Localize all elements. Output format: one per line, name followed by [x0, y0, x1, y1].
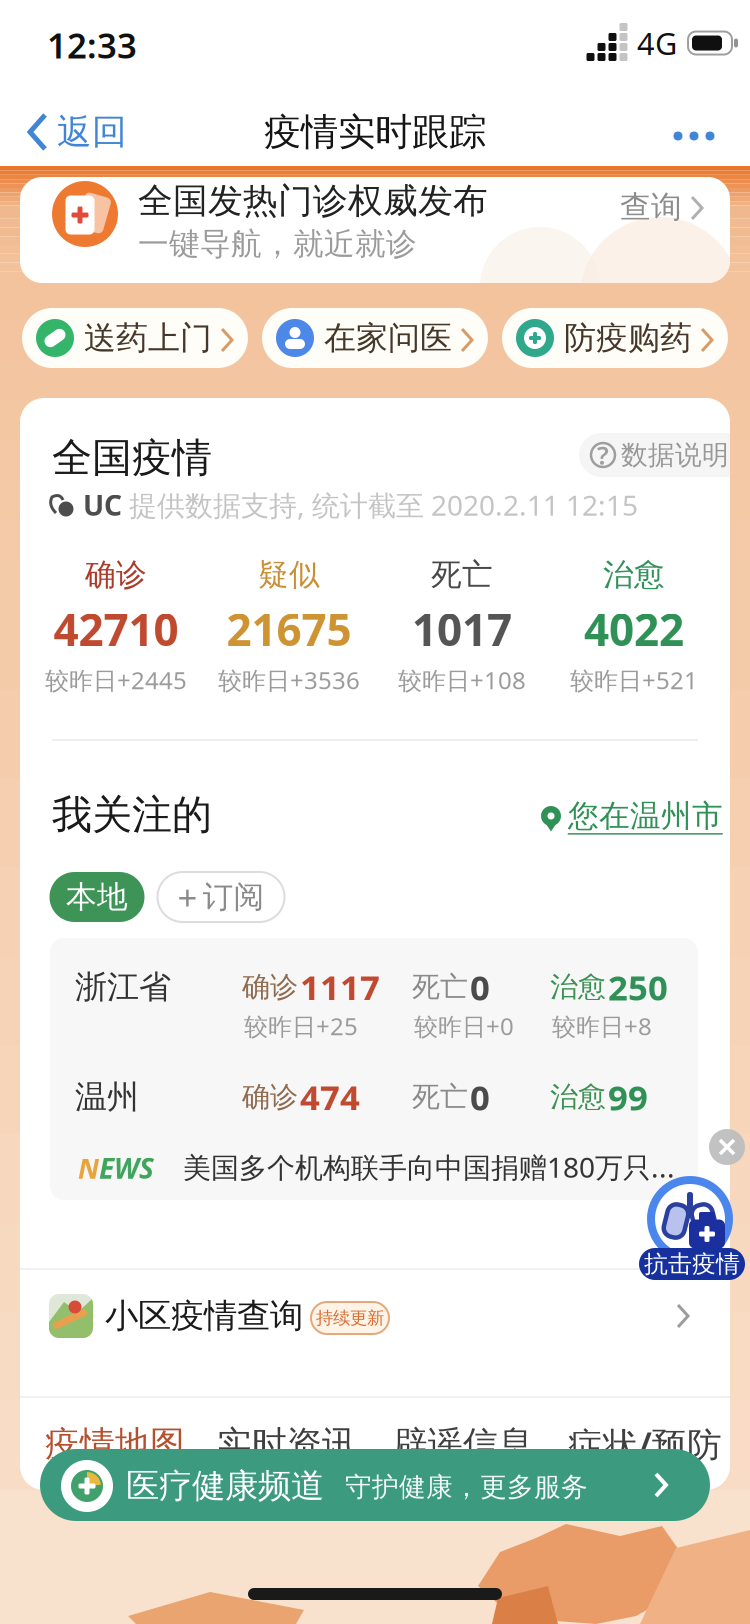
staticText: 一键导航，就近就诊 — [138, 225, 417, 263]
button[interactable]: 小区疫情查询 — [20, 1272, 730, 1364]
staticText: 本地 — [66, 878, 128, 916]
staticText: 小区疫情查询 — [105, 1295, 303, 1336]
staticText: 确诊 — [242, 970, 298, 1004]
staticText: 守护健康，更多服务 — [345, 1471, 588, 1503]
staticText: 4022 — [584, 600, 684, 658]
staticText: 较昨日+25 — [244, 1010, 358, 1042]
staticText: 0 — [470, 964, 490, 1010]
staticText: 较昨日+2445 — [45, 664, 187, 696]
button[interactable]: + — [157, 872, 284, 922]
staticText: 较昨日+0 — [414, 1010, 514, 1042]
staticText: 确诊 — [242, 1080, 298, 1114]
staticText: 疫情地图 — [45, 1423, 185, 1465]
staticText: 提供数据支持, 统计截至 2020.2.11 12:15 — [129, 486, 638, 524]
button[interactable]: 返回 — [21, 105, 133, 159]
staticText: 治愈 — [603, 556, 665, 594]
staticText: 死亡 — [412, 1080, 468, 1114]
staticText: 实时资讯 — [217, 1423, 357, 1465]
staticText: 数据说明 — [621, 439, 729, 471]
staticText: 较昨日+521 — [570, 664, 698, 696]
staticText: 死亡 — [431, 556, 493, 594]
staticText: 医疗健康频道 — [126, 1465, 324, 1506]
button[interactable]: 送药上门 — [22, 308, 248, 368]
staticText: 辟谣信息 — [393, 1423, 533, 1465]
button[interactable]: 疫情地图 — [37, 1413, 193, 1475]
staticText: 治愈 — [550, 970, 606, 1004]
button[interactable]: 本地 — [49, 872, 144, 922]
staticText: 250 — [608, 964, 668, 1010]
staticText: 防疫购药 — [564, 318, 692, 358]
staticText: 疫情实时跟踪 — [264, 109, 486, 155]
button[interactable]: 全国发热门诊权威发布 — [20, 177, 730, 283]
staticText: 全国发热门诊权威发布 — [138, 180, 488, 222]
staticText: 全国疫情 — [52, 433, 212, 482]
button[interactable]: 更多 — [663, 121, 724, 150]
staticText: 确诊 — [85, 556, 147, 594]
button[interactable]: 关闭 — [709, 1129, 745, 1165]
staticText: 在家问医 — [324, 318, 452, 358]
staticText: 治愈 — [550, 1080, 606, 1114]
staticText: 浙江省 — [75, 967, 171, 1007]
staticText: N — [78, 1149, 99, 1187]
staticText: 送药上门 — [84, 318, 212, 358]
staticText: 1117 — [300, 964, 380, 1010]
staticText: 较昨日+108 — [398, 664, 526, 696]
button[interactable]: 辟谣信息 — [385, 1413, 541, 1475]
staticText: 12:33 — [47, 22, 137, 68]
staticText: 1017 — [412, 600, 512, 658]
staticText: 较昨日+3536 — [218, 664, 360, 696]
button[interactable]: 在家问医 — [262, 308, 488, 368]
staticText: 我关注的 — [52, 790, 212, 839]
button[interactable]: N — [50, 1136, 698, 1200]
staticText: 4G — [637, 23, 677, 63]
button[interactable]: 实时资讯 — [209, 1413, 365, 1475]
staticText: + — [177, 874, 197, 920]
staticText: 42710 — [53, 600, 178, 658]
staticText: 21675 — [226, 600, 351, 658]
staticText: 查询 — [620, 188, 682, 226]
staticText: 较昨日+8 — [552, 1010, 652, 1042]
button[interactable]: 防疫购药 — [502, 308, 728, 368]
staticText: 症状/预防 — [568, 1421, 722, 1467]
staticText: 您在温州市 — [568, 797, 723, 835]
staticText: 美国多个机构联手向中国捐赠180万只... — [183, 1148, 675, 1186]
staticText: 死亡 — [412, 970, 468, 1004]
button[interactable]: 医疗健康频道 — [40, 1449, 710, 1521]
staticText: UC — [83, 486, 122, 524]
staticText: EWS — [99, 1149, 154, 1187]
staticText: 订阅 — [202, 878, 264, 916]
staticText: 474 — [300, 1074, 360, 1120]
staticText: 99 — [608, 1074, 648, 1120]
staticText: 持续更新 — [316, 1307, 384, 1329]
staticText: 0 — [470, 1074, 490, 1120]
button[interactable]: 症状/预防 — [560, 1411, 730, 1477]
staticText: 疑似 — [258, 556, 320, 594]
button[interactable]: 您在温州市 — [541, 797, 723, 835]
button[interactable]: 抗击疫情 — [647, 1176, 733, 1262]
staticText: 温州 — [75, 1077, 139, 1117]
button[interactable]: 抗击疫情 — [639, 1248, 745, 1280]
staticText: 抗击疫情 — [644, 1249, 740, 1279]
button[interactable]: ? — [579, 433, 749, 477]
staticText: 返回 — [57, 111, 127, 153]
staticText: ? — [597, 438, 609, 472]
